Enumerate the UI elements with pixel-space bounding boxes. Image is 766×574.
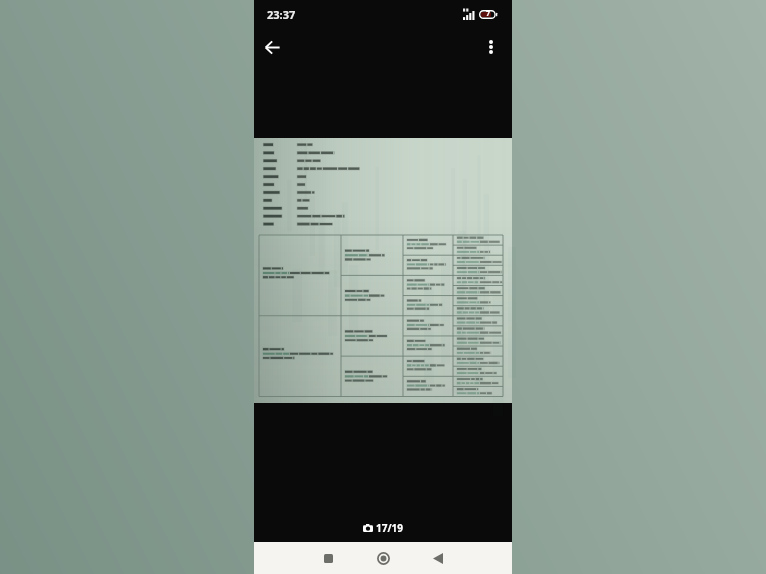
staticText: 7 <box>486 9 491 19</box>
staticText: 23:37 <box>267 7 296 22</box>
staticText: 17/19 <box>376 521 404 535</box>
button[interactable]: Back <box>421 542 455 574</box>
button[interactable]: Scanned page 17 of 19 <box>254 138 512 403</box>
button[interactable]: More options <box>476 32 506 62</box>
button[interactable]: Back <box>256 31 288 63</box>
button[interactable]: Home <box>366 542 400 574</box>
button[interactable]: Recent apps <box>311 542 345 574</box>
